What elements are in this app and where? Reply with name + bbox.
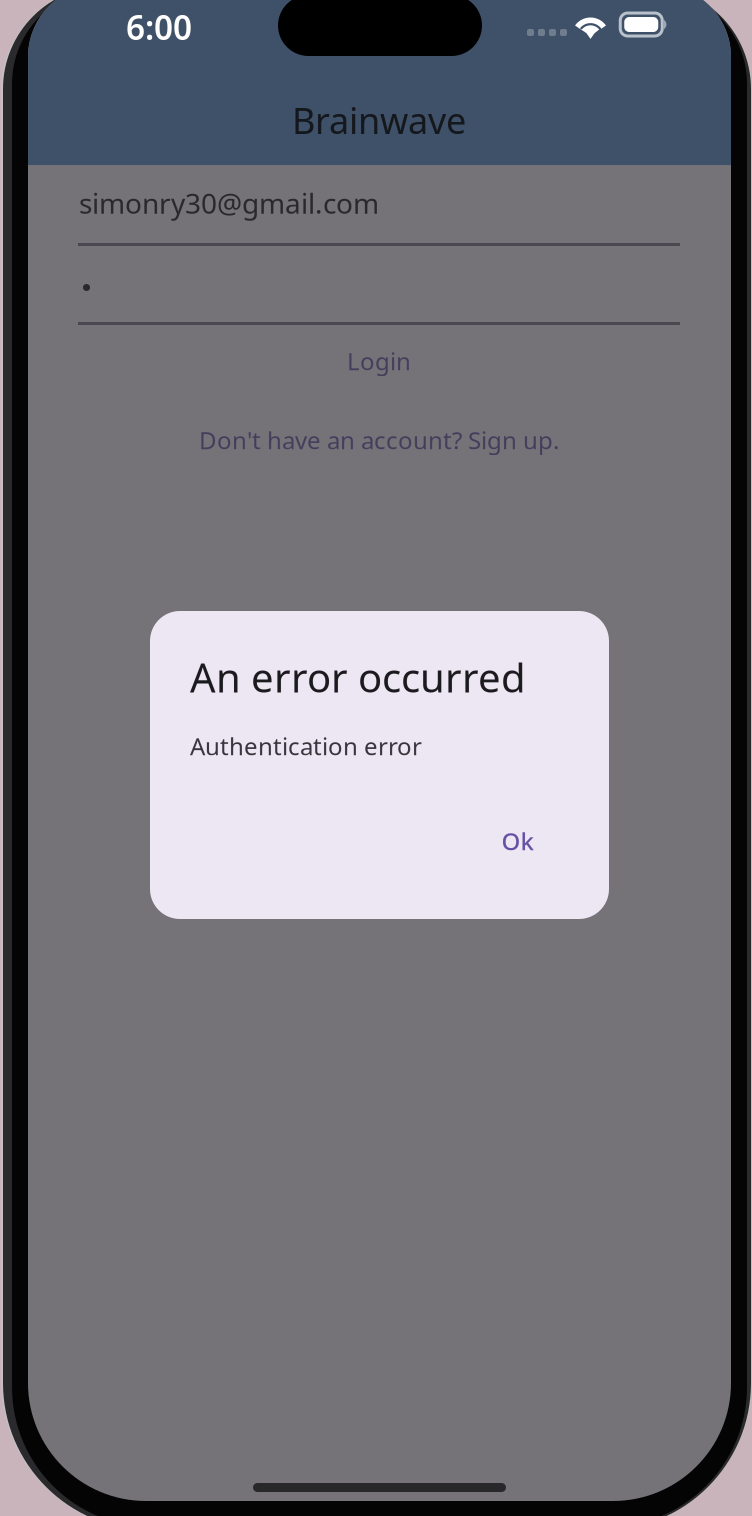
staticText: 6:00 bbox=[126, 5, 192, 49]
staticText: Don't have an account? Sign up. bbox=[199, 424, 559, 456]
staticText: Login bbox=[347, 345, 411, 377]
button[interactable]: Login bbox=[78, 335, 680, 387]
button[interactable]: Ok bbox=[476, 811, 559, 871]
staticText: simonry30@gmail.com bbox=[79, 184, 379, 222]
staticText: Ok bbox=[501, 825, 533, 857]
staticText: Brainwave bbox=[292, 96, 466, 144]
button[interactable]: Don't have an account? Sign up. bbox=[78, 414, 680, 466]
staticText: Authentication error bbox=[190, 730, 422, 762]
staticText: An error occurred bbox=[190, 650, 526, 703]
